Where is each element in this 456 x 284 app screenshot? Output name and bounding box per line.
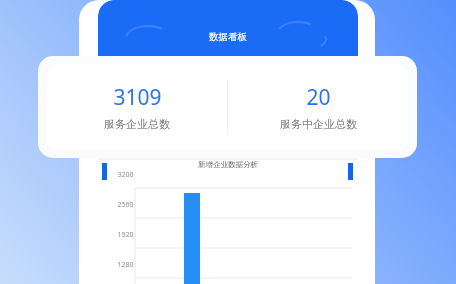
button[interactable]: 服务企业总数	[38, 56, 417, 158]
staticText: 3200	[117, 170, 134, 180]
staticText: 20	[306, 83, 331, 112]
button[interactable]: 服务企业总数	[47, 64, 227, 150]
staticText: 服务企业总数	[104, 117, 170, 131]
staticText: 数据看板	[209, 31, 247, 43]
staticText: 1280	[117, 260, 134, 270]
staticText: 2560	[117, 200, 134, 210]
staticText: 3109	[113, 83, 162, 112]
button[interactable]: 服务中企业总数	[228, 64, 408, 150]
staticText: 1920	[117, 230, 134, 240]
staticText: 新增企业数据分析	[198, 160, 258, 169]
staticText: 服务中企业总数	[280, 117, 357, 131]
